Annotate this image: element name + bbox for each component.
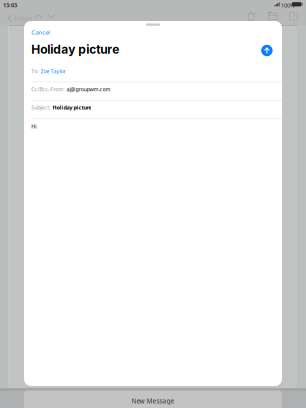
staticText: 100% [281, 1, 295, 9]
staticText: aj@groupwm.com [66, 85, 110, 93]
button[interactable]: Previous message [32, 12, 45, 21]
button[interactable]: New message [287, 9, 301, 23]
button[interactable]: Send [261, 45, 273, 56]
staticText: Subject: [31, 104, 50, 111]
staticText: Holiday picture [31, 42, 119, 57]
staticText: Cc/Bcc, From: [31, 85, 64, 93]
button[interactable]: New Message [24, 390, 282, 408]
button[interactable]: Cc/Bcc, From: [31, 84, 275, 95]
staticText: To: [31, 68, 38, 75]
staticText: Inbox [14, 14, 31, 22]
button[interactable]: To: [31, 66, 275, 77]
staticText: New Message [131, 397, 174, 405]
button[interactable]: Delete [244, 9, 258, 23]
staticText: Zoe Taylor [40, 68, 65, 75]
staticText: Holiday picture [52, 104, 91, 111]
button[interactable]: Move to folder [265, 9, 280, 23]
button[interactable]: Cancel [29, 26, 52, 38]
button[interactable]: Subject: [31, 102, 275, 113]
staticText: Cancel [31, 28, 50, 36]
button[interactable]: Inbox [6, 11, 33, 25]
staticText: 13:03 [3, 1, 17, 9]
button[interactable]: Next message [45, 12, 58, 21]
staticText: Hi [31, 123, 36, 130]
